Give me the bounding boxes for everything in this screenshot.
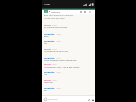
staticText: 14:36: [44, 3, 50, 6]
staticText: Magritte: [44, 39, 55, 42]
button[interactable]: Video call: [79, 10, 82, 13]
staticText: Je cherche des sources: [44, 26, 68, 29]
staticText: 14:26: [56, 71, 61, 73]
button[interactable]: Emoji: [43, 97, 47, 101]
staticText: Magritte: [51, 11, 61, 14]
staticText: 14:05: [56, 33, 61, 35]
staticText: La question c'est : l'on a des toutes: [44, 66, 80, 69]
staticText: 14:31: [52, 79, 57, 81]
staticText: Magritte: [44, 70, 55, 73]
staticText: 14:12: [52, 48, 57, 50]
staticText: 14:18: [56, 57, 61, 59]
button[interactable]: More options: [88, 10, 91, 13]
staticText: Bien: [44, 35, 49, 38]
staticText: Marie: [44, 62, 51, 65]
staticText: Nous imagions mais attendu en: [44, 59, 77, 62]
staticText: La PREUVE ne se un ret: [44, 50, 68, 53]
staticText: 14:36: [56, 87, 61, 89]
staticText: Mais oui: [44, 81, 53, 84]
button[interactable]: Search: [83, 10, 86, 13]
button[interactable]: Group avatar: [44, 10, 48, 13]
button[interactable]: Send: [91, 98, 94, 101]
staticText: No: [44, 73, 47, 76]
staticText: Marie: [44, 47, 51, 50]
staticText: Marie: [44, 78, 51, 81]
staticText: Magritte: [44, 56, 55, 59]
staticText: Ok: [44, 42, 47, 45]
staticText: 14:09: [56, 40, 61, 42]
staticText: ou: [44, 89, 47, 92]
staticText: Message: [48, 98, 58, 101]
staticText: Marie: [44, 23, 51, 26]
staticText: 14:22: [52, 63, 57, 65]
staticText: 14:02: [52, 24, 57, 26]
staticText: Tu fais que tres bien: [44, 17, 65, 20]
staticText: Magritte: [44, 32, 55, 35]
staticText: Magritte: [44, 86, 55, 89]
button[interactable]: Attach file: [87, 98, 90, 101]
staticText: Bon c'est bizarre ce hardi for: [44, 14, 74, 17]
